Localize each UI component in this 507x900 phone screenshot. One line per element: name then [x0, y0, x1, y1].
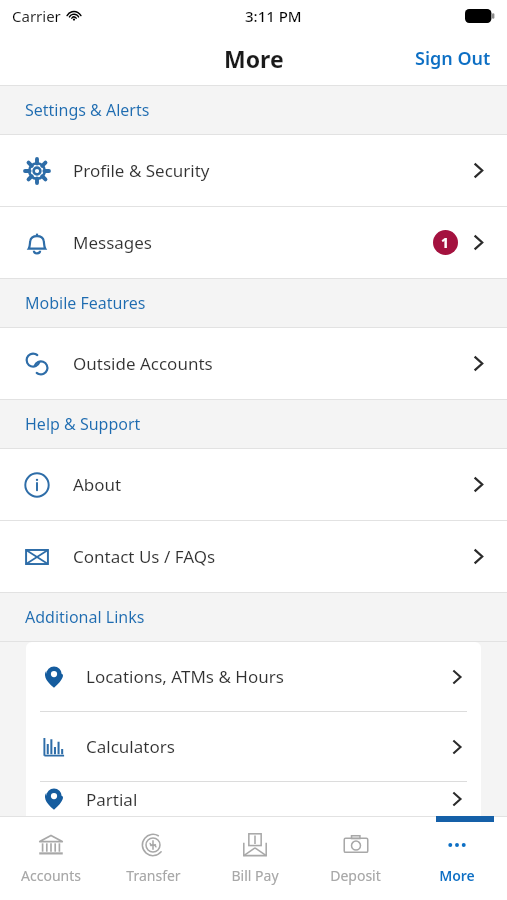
button[interactable]: Bill Pay — [204, 816, 305, 900]
button[interactable]: Calculators — [26, 712, 481, 781]
button[interactable]: Partial — [26, 782, 481, 816]
button[interactable]: Locations, ATMs & Hours — [26, 642, 481, 711]
staticText: Partial — [86, 788, 138, 811]
button[interactable]: Messages — [0, 207, 507, 278]
staticText: Contact Us / FAQs — [73, 545, 216, 568]
staticText: Sign Out — [415, 46, 491, 71]
button[interactable]: Sign Out — [399, 36, 507, 81]
staticText: More — [439, 866, 475, 885]
staticText: Accounts — [21, 866, 81, 885]
staticText: Profile & Security — [73, 159, 210, 182]
staticText: Settings & Alerts — [25, 99, 150, 121]
staticText: 3:11 PM — [245, 6, 302, 26]
button[interactable]: Contact Us / FAQs — [0, 521, 507, 592]
staticText: 1 — [441, 233, 450, 252]
staticText: Carrier — [12, 6, 61, 26]
staticText: Messages — [73, 231, 153, 254]
staticText: About — [73, 473, 122, 496]
staticText: Calculators — [86, 735, 175, 758]
staticText: Mobile Features — [25, 292, 146, 314]
button[interactable]: More — [406, 816, 507, 900]
staticText: Transfer — [126, 866, 181, 885]
staticText: Deposit — [330, 866, 381, 885]
button[interactable]: Accounts — [0, 816, 102, 900]
staticText: Locations, ATMs & Hours — [86, 665, 284, 688]
staticText: Bill Pay — [231, 866, 279, 885]
staticText: More — [224, 43, 284, 74]
staticText: Outside Accounts — [73, 352, 213, 375]
button[interactable]: Outside Accounts — [0, 328, 507, 399]
button[interactable]: Deposit — [305, 816, 406, 900]
button[interactable]: Transfer — [102, 816, 204, 900]
button[interactable]: Profile & Security — [0, 135, 507, 206]
staticText: Additional Links — [25, 606, 145, 628]
staticText: Help & Support — [25, 413, 141, 435]
button[interactable]: About — [0, 449, 507, 520]
